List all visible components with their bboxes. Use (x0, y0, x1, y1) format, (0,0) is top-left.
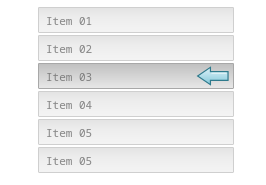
staticText: Item 03 (46, 69, 93, 84)
button[interactable]: Item 01 (38, 7, 234, 33)
staticText: Item 04 (46, 97, 93, 112)
button[interactable]: Go back (196, 66, 230, 86)
staticText: Item 05 (46, 125, 93, 140)
button[interactable]: Item 05 (38, 119, 234, 145)
button[interactable]: Item 02 (38, 35, 234, 61)
staticText: Item 02 (46, 41, 93, 56)
staticText: Item 01 (46, 13, 93, 28)
button[interactable]: Item 05 (38, 147, 234, 173)
button[interactable]: Item 04 (38, 91, 234, 117)
staticText: Item 05 (46, 153, 93, 168)
button[interactable]: Item 03 (38, 63, 234, 89)
